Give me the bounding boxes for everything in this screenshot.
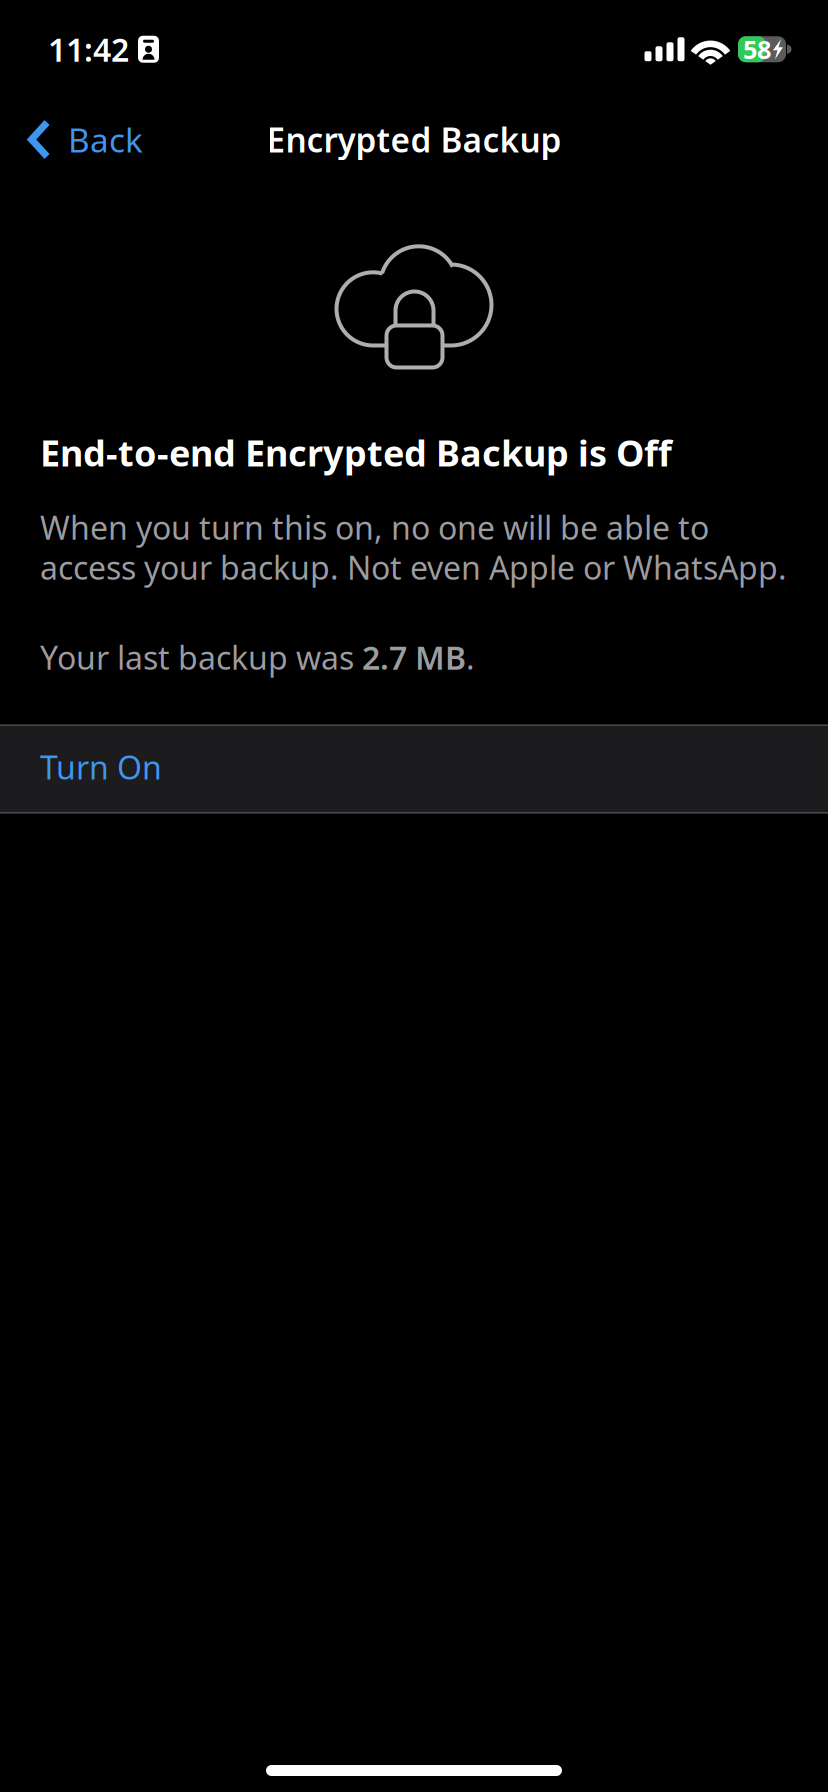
button[interactable]: Turn On <box>0 724 828 813</box>
staticText: 58 <box>743 32 771 66</box>
staticText: . <box>466 636 475 678</box>
staticText: 2.7 MB <box>362 636 466 678</box>
staticText: End-to-end Encrypted Backup is Off <box>40 429 672 476</box>
staticText: Your last backup was <box>40 636 362 678</box>
button[interactable]: Back <box>0 95 163 183</box>
staticText: access your backup. Not even Apple or Wh… <box>40 546 787 588</box>
staticText: Turn On <box>40 746 162 788</box>
staticText: When you turn this on, no one will be ab… <box>40 506 709 548</box>
staticText: Encrypted Backup <box>266 117 561 162</box>
staticText: 11:42 <box>48 28 129 70</box>
staticText: Back <box>68 117 143 162</box>
